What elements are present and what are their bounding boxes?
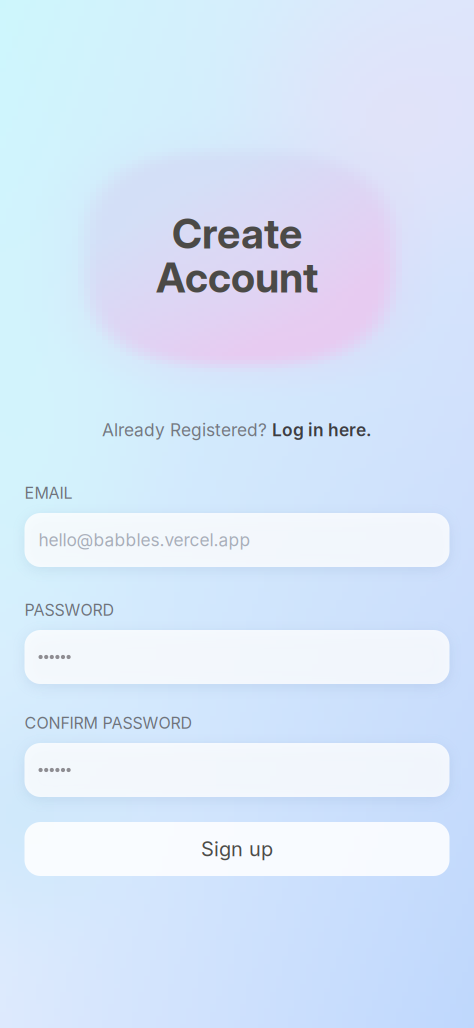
- staticText: PASSWORD: [24, 600, 114, 620]
- button[interactable]: [24, 630, 449, 684]
- staticText: Account: [156, 252, 318, 302]
- button[interactable]: Log in here.: [272, 419, 372, 440]
- staticText: Sign up: [201, 837, 273, 861]
- button[interactable]: Sign up: [24, 822, 449, 876]
- button[interactable]: hello@babbles.vercel.app: [24, 513, 449, 567]
- staticText: EMAIL: [24, 483, 72, 503]
- staticText: hello@babbles.vercel.app: [38, 529, 250, 550]
- staticText: Log in here.: [272, 419, 372, 440]
- staticText: Create: [172, 208, 302, 258]
- staticText: Already Registered?: [102, 419, 272, 440]
- staticText: CONFIRM PASSWORD: [24, 713, 192, 733]
- button[interactable]: [24, 743, 449, 797]
